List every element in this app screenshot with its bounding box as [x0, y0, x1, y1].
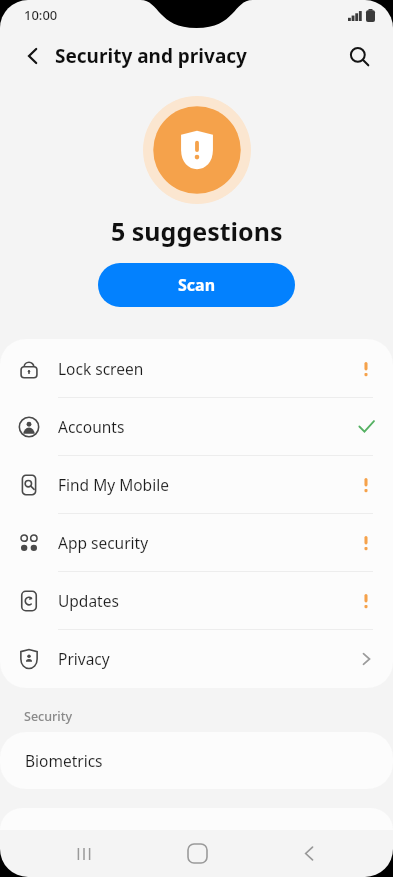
button[interactable]: Privacy	[0, 630, 393, 687]
staticText: Lock screen	[58, 358, 339, 379]
staticText: Updates	[58, 590, 339, 611]
staticText: Find My Mobile	[58, 474, 339, 495]
button[interactable]: App security	[0, 514, 393, 572]
staticText: Privacy	[58, 648, 339, 669]
button[interactable]: Updates	[0, 572, 393, 630]
staticText: App security	[58, 532, 339, 553]
staticText: Accounts	[58, 416, 339, 437]
button[interactable]: Accounts	[0, 398, 393, 456]
button[interactable]: Home	[168, 830, 226, 877]
staticText: Biometrics	[25, 750, 103, 771]
button[interactable]: Scan	[98, 263, 295, 307]
staticText: 10:00	[24, 6, 58, 24]
staticText: 5 suggestions	[111, 214, 283, 248]
staticText: Scan	[178, 274, 216, 296]
button[interactable]: Biometrics	[0, 732, 393, 789]
button[interactable]: Search	[337, 34, 381, 78]
button[interactable]: Recents	[55, 830, 113, 877]
button[interactable]: Find My Mobile	[0, 456, 393, 514]
button[interactable]: Lock screen	[0, 340, 393, 398]
staticText: Security	[24, 708, 73, 725]
button[interactable]: Back	[12, 35, 54, 77]
staticText: Security and privacy	[55, 43, 247, 69]
button[interactable]: Back	[280, 830, 338, 877]
